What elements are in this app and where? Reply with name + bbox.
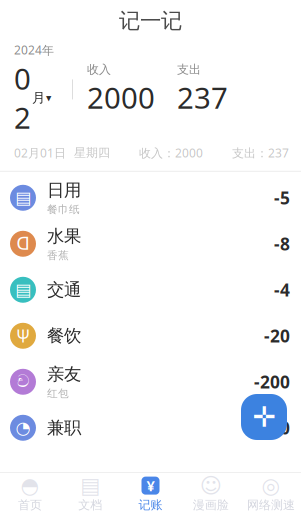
staticText: 收入：2000 bbox=[139, 145, 203, 161]
button[interactable]: ▤ bbox=[0, 175, 301, 221]
staticText: 日用 bbox=[47, 180, 81, 201]
staticText: -4 bbox=[274, 278, 290, 301]
staticText: 2024年 bbox=[14, 42, 54, 58]
staticText: 记账 bbox=[138, 498, 162, 512]
staticText: ච bbox=[17, 373, 29, 390]
staticText: ☺ bbox=[200, 473, 222, 498]
staticText: 交通 bbox=[47, 279, 81, 300]
staticText: ▤ bbox=[80, 473, 100, 498]
staticText: 首页 bbox=[18, 498, 42, 512]
staticText: 237 bbox=[177, 78, 228, 117]
staticText: 02 bbox=[14, 59, 31, 137]
staticText: 02月01日 bbox=[14, 145, 66, 161]
staticText: ▾ bbox=[46, 92, 51, 104]
button[interactable]: ච bbox=[0, 359, 301, 405]
staticText: 亲友 bbox=[47, 364, 81, 385]
staticText: ▤ bbox=[15, 280, 31, 300]
staticText: 红包 bbox=[47, 387, 69, 400]
button[interactable]: 2024年 bbox=[14, 42, 72, 137]
staticText: -20 bbox=[264, 324, 290, 347]
button[interactable]: Add record bbox=[241, 394, 287, 440]
staticText: ᗡ bbox=[16, 234, 29, 254]
staticText: 2000 bbox=[87, 78, 155, 117]
staticText: 餐巾纸 bbox=[47, 203, 80, 216]
staticText: 香蕉 bbox=[47, 249, 69, 262]
staticText: 支出：237 bbox=[232, 145, 289, 161]
staticText: ◔ bbox=[15, 418, 30, 438]
staticText: 餐饮 bbox=[47, 325, 81, 346]
button[interactable]: ◓ bbox=[0, 473, 60, 516]
button[interactable]: ▤ bbox=[60, 473, 120, 516]
staticText: ✛ bbox=[252, 401, 275, 433]
staticText: ◓ bbox=[21, 473, 40, 498]
staticText: 漫画脸 bbox=[193, 498, 229, 512]
button[interactable]: ¥ bbox=[120, 473, 181, 516]
button[interactable]: ◎ bbox=[241, 473, 301, 516]
staticText: 兼职 bbox=[47, 417, 81, 438]
staticText: 文档 bbox=[78, 498, 102, 512]
button[interactable]: ☺ bbox=[181, 473, 241, 516]
staticText: 记一记 bbox=[119, 8, 182, 34]
staticText: 2000 bbox=[250, 416, 290, 439]
button[interactable]: Ψ bbox=[0, 313, 301, 359]
staticText: 支出 bbox=[177, 62, 201, 77]
staticText: 收入 bbox=[87, 62, 111, 77]
staticText: -200 bbox=[254, 370, 290, 393]
staticText: ◎ bbox=[261, 473, 280, 498]
button[interactable]: ▤ bbox=[0, 267, 301, 313]
staticText: ¥ bbox=[146, 476, 154, 495]
staticText: ▤ bbox=[15, 188, 31, 208]
staticText: -8 bbox=[274, 232, 290, 255]
staticText: 网络测速 bbox=[247, 498, 295, 512]
staticText: Ψ bbox=[16, 324, 30, 347]
staticText: 星期四 bbox=[74, 145, 110, 160]
button[interactable]: ◔ bbox=[0, 405, 301, 451]
button[interactable]: ᗡ bbox=[0, 221, 301, 267]
staticText: 月 bbox=[32, 90, 45, 106]
staticText: -5 bbox=[274, 186, 290, 209]
staticText: 水果 bbox=[47, 226, 81, 247]
